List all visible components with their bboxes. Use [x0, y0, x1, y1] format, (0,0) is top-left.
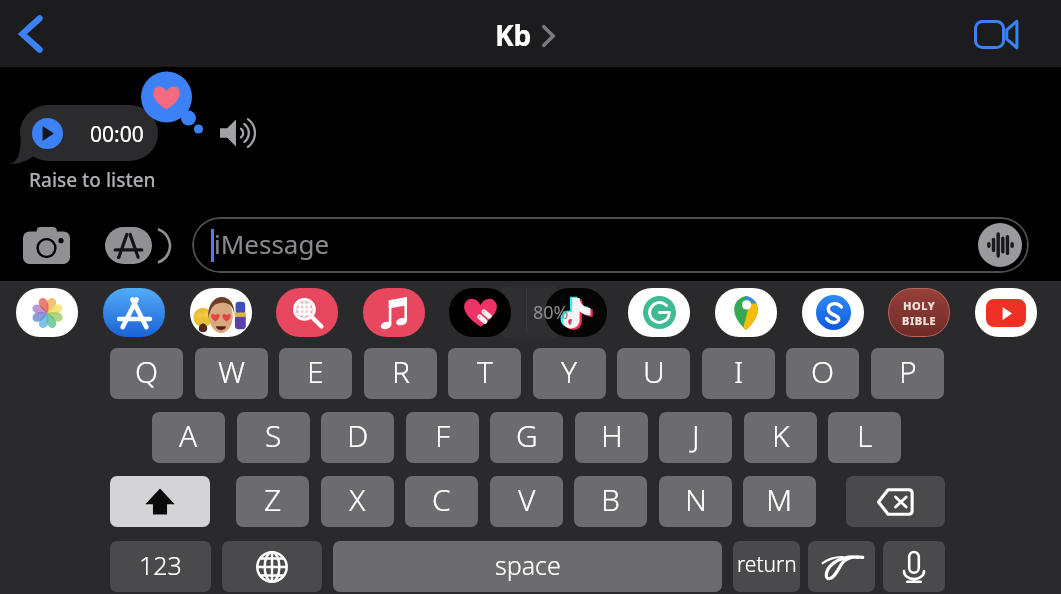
- staticText: I: [734, 351, 744, 392]
- button[interactable]: music: [363, 288, 425, 337]
- button[interactable]: A: [152, 412, 225, 463]
- staticText: T: [477, 351, 493, 392]
- button[interactable]: U: [617, 348, 690, 399]
- button[interactable]: 123: [110, 541, 211, 592]
- staticText: Y: [561, 351, 578, 392]
- button[interactable]: shazam: [802, 288, 864, 337]
- staticText: X: [349, 479, 366, 520]
- staticText: Z: [264, 479, 282, 520]
- staticText: 123: [139, 548, 182, 582]
- button[interactable]: Kb: [495, 16, 555, 54]
- button[interactable]: B: [574, 476, 647, 527]
- button[interactable]: X: [321, 476, 394, 527]
- button[interactable]: space: [333, 541, 722, 592]
- button[interactable]: App Store apps: [103, 219, 165, 271]
- staticText: M: [766, 479, 793, 520]
- button[interactable]: W: [195, 348, 268, 399]
- button[interactable]: M: [743, 476, 816, 527]
- button[interactable]: Q: [110, 348, 183, 399]
- button[interactable]: C: [405, 476, 478, 527]
- staticText: Raise to listen: [29, 167, 156, 193]
- button[interactable]: D: [321, 412, 394, 463]
- staticText: 00:00: [90, 120, 144, 149]
- button[interactable]: Z: [236, 476, 309, 527]
- staticText: F: [435, 415, 451, 456]
- staticText: Q: [135, 351, 159, 392]
- button[interactable]: F: [406, 412, 479, 463]
- button[interactable]: Y: [533, 348, 606, 399]
- button[interactable]: R: [364, 348, 437, 399]
- staticText: P: [899, 351, 917, 392]
- staticText: R: [392, 351, 410, 392]
- button[interactable]: Record audio message: [978, 223, 1022, 267]
- staticText: J: [692, 415, 700, 456]
- staticText: N: [685, 479, 707, 520]
- button[interactable]: I: [702, 348, 775, 399]
- button[interactable]: O: [786, 348, 859, 399]
- staticText: BIBLE: [902, 313, 937, 328]
- button[interactable]: fitness: [449, 288, 511, 337]
- button[interactable]: J: [659, 412, 732, 463]
- button[interactable]: appstore: [103, 288, 165, 337]
- button[interactable]: FaceTime video call: [962, 8, 1030, 60]
- button[interactable]: bible: [888, 288, 950, 337]
- button[interactable]: memoji: [190, 288, 252, 337]
- button[interactable]: S: [237, 412, 310, 463]
- button[interactable]: tiktok: [545, 288, 607, 337]
- staticText: W: [218, 351, 245, 392]
- button[interactable]: Backspace: [846, 476, 945, 527]
- button[interactable]: iMessage: [192, 217, 1029, 273]
- button[interactable]: Dictation: [883, 541, 945, 592]
- button[interactable]: Change keyboard: [222, 541, 322, 592]
- staticText: G: [516, 415, 538, 456]
- staticText: K: [772, 415, 790, 456]
- button[interactable]: photos: [16, 288, 78, 337]
- button[interactable]: V: [490, 476, 563, 527]
- button[interactable]: E: [279, 348, 352, 399]
- staticText: U: [643, 351, 665, 392]
- staticText: V: [518, 479, 536, 520]
- staticText: O: [811, 351, 835, 392]
- button[interactable]: maps: [715, 288, 777, 337]
- button[interactable]: G: [490, 412, 563, 463]
- button[interactable]: N: [659, 476, 732, 527]
- staticText: 80%: [533, 300, 569, 325]
- button[interactable]: Play audio message: [32, 118, 63, 149]
- staticText: B: [601, 479, 620, 520]
- staticText: HOLY: [903, 298, 936, 313]
- button[interactable]: return: [733, 541, 800, 592]
- staticText: C: [432, 479, 451, 520]
- staticText: A: [179, 415, 198, 456]
- button[interactable]: images: [276, 288, 338, 337]
- staticText: return: [737, 550, 797, 579]
- staticText: E: [307, 351, 324, 392]
- staticText: S: [265, 415, 282, 456]
- staticText: D: [347, 415, 369, 456]
- staticText: space: [495, 548, 561, 582]
- button[interactable]: H: [575, 412, 648, 463]
- button[interactable]: grammarly: [628, 288, 690, 337]
- button[interactable]: Shift: [110, 476, 210, 527]
- staticText: iMessage: [214, 226, 330, 261]
- button[interactable]: Scribble handwriting: [808, 541, 875, 592]
- button[interactable]: T: [448, 348, 521, 399]
- button[interactable]: P: [871, 348, 944, 399]
- button[interactable]: Back: [6, 9, 56, 59]
- button[interactable]: L: [828, 412, 901, 463]
- button[interactable]: Camera: [19, 219, 73, 271]
- staticText: L: [857, 415, 873, 456]
- staticText: H: [601, 415, 623, 456]
- staticText: Kb: [495, 16, 532, 54]
- button[interactable]: K: [744, 412, 817, 463]
- button[interactable]: youtube: [975, 288, 1037, 337]
